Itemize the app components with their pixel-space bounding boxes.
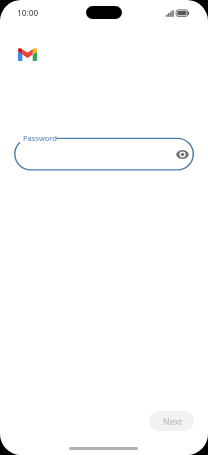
button[interactable]: Show password bbox=[171, 143, 193, 165]
button[interactable]: Next bbox=[149, 411, 194, 431]
staticText: 10:00 bbox=[17, 7, 39, 18]
staticText: Next bbox=[163, 416, 183, 428]
staticText: Password bbox=[23, 133, 57, 143]
button[interactable]: Show password bbox=[14, 138, 194, 170]
